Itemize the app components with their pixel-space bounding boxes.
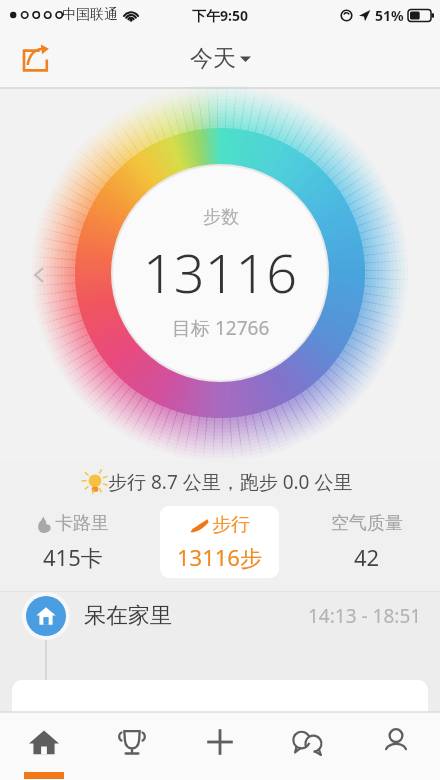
button[interactable]: 步行	[160, 506, 279, 578]
button[interactable]: 今天	[190, 44, 251, 73]
staticText: 步数	[203, 206, 239, 229]
staticText: 步行	[212, 513, 250, 537]
staticText: 下午9:50	[192, 6, 248, 25]
staticText: 42	[354, 542, 380, 572]
staticText: 13116	[143, 235, 298, 309]
button[interactable]: Share	[14, 37, 58, 81]
staticText: 415卡	[43, 542, 103, 572]
button[interactable]: 空气质量	[293, 512, 440, 572]
staticText: 目标 12766	[172, 315, 270, 341]
button[interactable]: 呆在家里	[0, 592, 440, 662]
button[interactable]: Messages	[264, 712, 352, 780]
staticText: 空气质量	[331, 512, 403, 535]
staticText: 步行 8.7 公里，跑步 0.0 公里	[108, 469, 353, 495]
staticText: 中国联通	[62, 6, 118, 24]
staticText: 今天	[190, 44, 236, 73]
staticText: 呆在家里	[84, 602, 172, 630]
button[interactable]: Add	[176, 712, 264, 780]
staticText: 51%	[375, 6, 404, 25]
staticText: 卡路里	[55, 512, 109, 535]
button[interactable]: Achievements	[88, 712, 176, 780]
button[interactable]: Home	[0, 712, 88, 780]
button[interactable]: Profile	[352, 712, 440, 780]
staticText: 14:13 - 18:51	[308, 603, 422, 629]
staticText: 13116步	[177, 542, 262, 572]
button[interactable]: 卡路里	[0, 512, 146, 572]
button[interactable]: Previous day	[22, 258, 56, 292]
